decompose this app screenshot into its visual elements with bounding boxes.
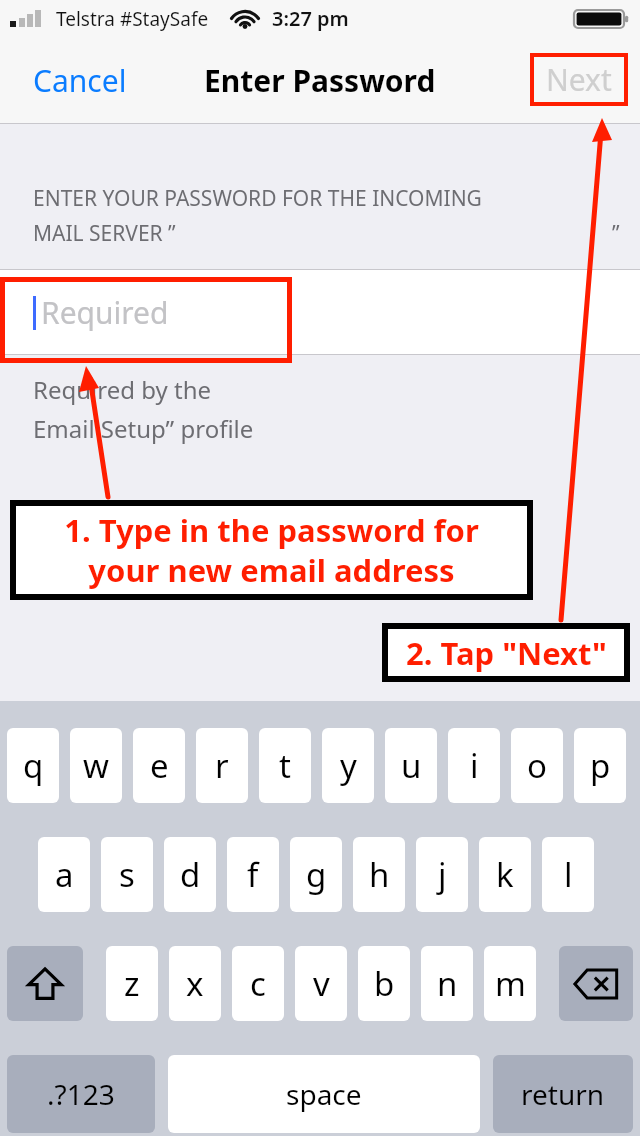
button[interactable]: z bbox=[106, 946, 158, 1021]
button[interactable]: t bbox=[259, 728, 311, 803]
staticText: Next bbox=[546, 59, 612, 100]
staticText: 3:27 pm bbox=[272, 5, 349, 32]
button[interactable]: c bbox=[232, 946, 284, 1021]
button[interactable]: w bbox=[70, 728, 122, 803]
staticText: return bbox=[521, 1075, 605, 1113]
staticText: MAIL SERVER ” bbox=[33, 219, 176, 248]
button[interactable]: n bbox=[421, 946, 473, 1021]
button[interactable]: h bbox=[353, 837, 405, 912]
staticText: Enter Password bbox=[204, 60, 436, 101]
staticText: d bbox=[180, 852, 201, 897]
button[interactable]: return bbox=[493, 1055, 633, 1133]
staticText: y bbox=[340, 743, 357, 788]
button[interactable]: q bbox=[7, 728, 59, 803]
button[interactable]: o bbox=[511, 728, 563, 803]
staticText: s bbox=[119, 852, 135, 897]
staticText: u bbox=[401, 743, 422, 788]
button[interactable]: g bbox=[290, 837, 342, 912]
staticText: p bbox=[590, 743, 611, 788]
button[interactable]: i bbox=[448, 728, 500, 803]
staticText: j bbox=[438, 852, 447, 897]
staticText: z bbox=[124, 961, 140, 1006]
staticText: c bbox=[250, 961, 266, 1006]
button[interactable]: p bbox=[574, 728, 626, 803]
staticText: k bbox=[496, 852, 514, 897]
staticText: Cancel bbox=[33, 60, 127, 101]
staticText: h bbox=[369, 852, 390, 897]
button[interactable]: y bbox=[322, 728, 374, 803]
button[interactable]: b bbox=[358, 946, 410, 1021]
button[interactable]: k bbox=[479, 837, 531, 912]
button[interactable]: r bbox=[196, 728, 248, 803]
staticText: t bbox=[279, 743, 291, 788]
staticText: Required by the bbox=[33, 373, 212, 406]
button[interactable]: v bbox=[295, 946, 347, 1021]
staticText: f bbox=[247, 852, 259, 897]
button[interactable]: s bbox=[101, 837, 153, 912]
button[interactable]: Backspace bbox=[559, 946, 633, 1021]
staticText: .?123 bbox=[47, 1075, 115, 1113]
staticText: v bbox=[313, 961, 330, 1006]
staticText: m bbox=[495, 961, 526, 1006]
button[interactable]: j bbox=[416, 837, 468, 912]
staticText: Email Setup” profile bbox=[33, 412, 254, 445]
staticText: n bbox=[437, 961, 458, 1006]
staticText: x bbox=[186, 961, 204, 1006]
button[interactable]: e bbox=[133, 728, 185, 803]
button[interactable]: d bbox=[164, 837, 216, 912]
button[interactable]: Shift bbox=[7, 946, 83, 1021]
staticText: g bbox=[306, 852, 327, 897]
button[interactable]: m bbox=[484, 946, 536, 1021]
button[interactable]: Cancel bbox=[20, 50, 140, 111]
staticText: a bbox=[55, 852, 74, 897]
button[interactable]: l bbox=[542, 837, 594, 912]
staticText: ” bbox=[612, 219, 620, 248]
button[interactable]: u bbox=[385, 728, 437, 803]
button[interactable]: Next bbox=[530, 53, 628, 106]
staticText: r bbox=[215, 743, 229, 788]
staticText: ENTER YOUR PASSWORD FOR THE INCOMING bbox=[33, 184, 482, 213]
button[interactable]: x bbox=[169, 946, 221, 1021]
button[interactable]: .?123 bbox=[7, 1055, 155, 1133]
staticText: b bbox=[374, 961, 395, 1006]
staticText: Required bbox=[41, 292, 169, 333]
staticText: w bbox=[83, 743, 109, 788]
staticText: l bbox=[564, 852, 573, 897]
button[interactable]: Required bbox=[0, 269, 640, 355]
staticText: space bbox=[286, 1075, 362, 1113]
staticText: 1. Type in the password for your new ema… bbox=[64, 509, 479, 591]
staticText: e bbox=[150, 743, 169, 788]
staticText: o bbox=[527, 743, 547, 788]
staticText: i bbox=[470, 743, 479, 788]
staticText: Telstra #StaySafe bbox=[56, 6, 209, 32]
staticText: q bbox=[23, 743, 44, 788]
button[interactable]: a bbox=[38, 837, 90, 912]
button[interactable]: f bbox=[227, 837, 279, 912]
staticText: 2. Tap "Next" bbox=[406, 632, 607, 674]
button[interactable]: space bbox=[168, 1055, 480, 1133]
